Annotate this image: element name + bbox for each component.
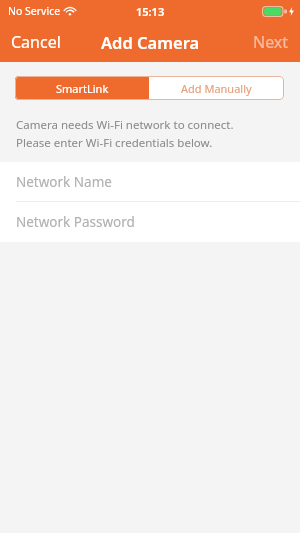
staticText: Camera needs Wi-Fi network to connect. (16, 117, 234, 133)
staticText: Please enter Wi-Fi credentials below. (16, 135, 213, 151)
button[interactable]: Cancel (0, 25, 71, 59)
staticText: SmartLink (56, 81, 109, 96)
staticText: Next (253, 31, 289, 53)
button[interactable]: Network Password (0, 202, 300, 241)
staticText: Cancel (11, 31, 61, 53)
button[interactable]: Add Manually (149, 76, 284, 100)
staticText: Add Camera (101, 31, 200, 53)
staticText: Add Manually (181, 81, 252, 96)
staticText: Network Password (16, 213, 135, 231)
staticText: No Service (8, 4, 61, 18)
staticText: 15:13 (136, 4, 165, 19)
button[interactable]: Network Name (0, 162, 300, 201)
button[interactable]: SmartLink (15, 76, 149, 100)
button[interactable]: Next (243, 25, 300, 59)
staticText: Network Name (16, 173, 112, 191)
